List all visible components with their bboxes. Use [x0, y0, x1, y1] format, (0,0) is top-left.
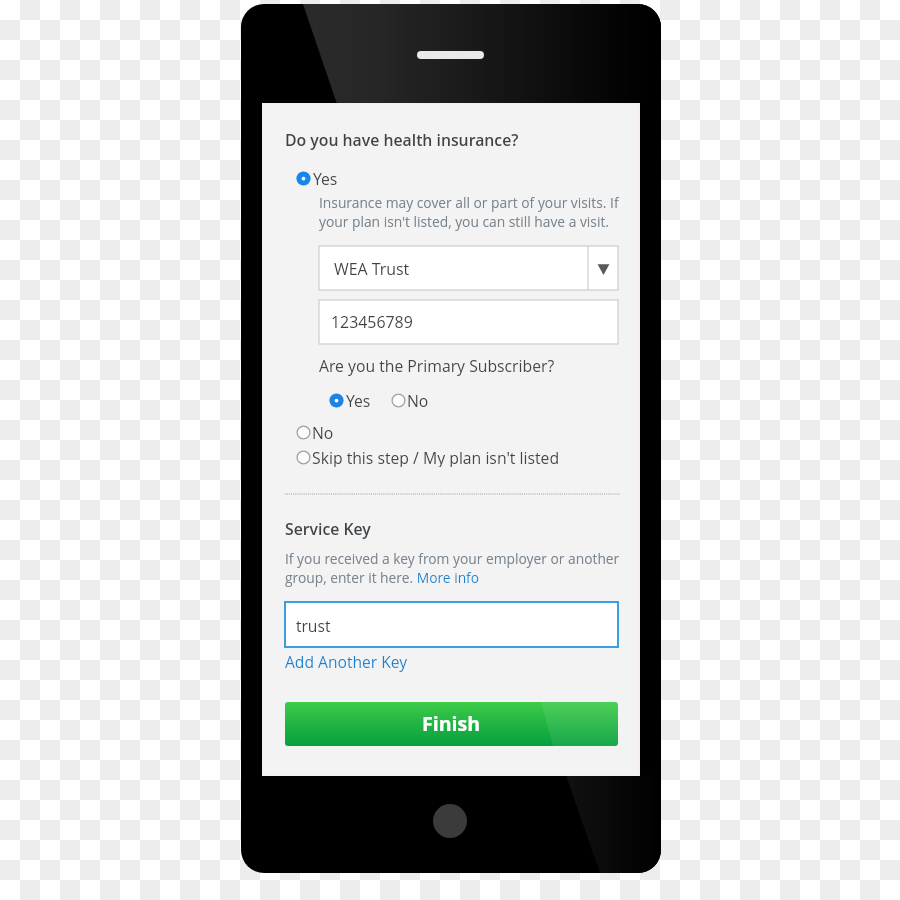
staticText: If you received a key from your employer… [285, 549, 620, 588]
button[interactable]: Yes [296, 168, 336, 188]
staticText: Yes [313, 168, 338, 188]
staticText: 123456789 [331, 311, 413, 333]
staticText: Finish [422, 710, 481, 737]
button[interactable] [319, 300, 618, 344]
button[interactable]: Add Another Key [285, 651, 407, 672]
staticText: Insurance may cover all or part of your … [319, 193, 619, 231]
button[interactable]: Home [433, 804, 467, 838]
button[interactable]: No [296, 422, 333, 442]
staticText: Do you have health insurance? [285, 129, 519, 151]
staticText: No [312, 422, 334, 442]
button[interactable] [285, 602, 618, 647]
staticText: WEA Trust [334, 258, 410, 280]
button[interactable]: Skip this step / My plan isn't listed [296, 447, 559, 467]
staticText: trust [296, 615, 331, 636]
staticText: No [407, 390, 429, 410]
staticText: Skip this step / My plan isn't listed [312, 447, 560, 467]
staticText: Service Key [285, 518, 371, 540]
button[interactable] [319, 246, 618, 290]
button[interactable]: No [391, 390, 428, 410]
staticText: Yes [346, 390, 371, 410]
button[interactable]: Yes [329, 390, 369, 410]
button[interactable]: Finish [285, 702, 618, 746]
staticText: Are you the Primary Subscriber? [319, 355, 555, 376]
